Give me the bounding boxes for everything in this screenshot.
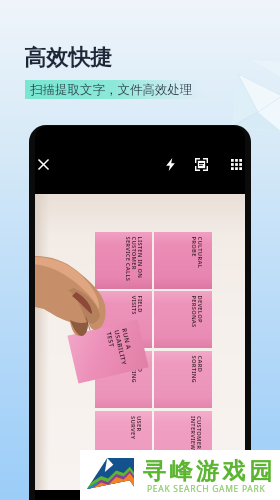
staticText: CUSTOMER bbox=[131, 236, 137, 270]
staticText: PROBE bbox=[191, 236, 197, 257]
staticText: INTERVIEW bbox=[191, 416, 197, 451]
staticText: 扫描提取文字，文件高效处理 bbox=[30, 82, 193, 98]
staticText: SORTING bbox=[191, 355, 197, 383]
staticText: PERSONAS bbox=[191, 295, 197, 327]
staticText: USABILITY bbox=[114, 329, 129, 366]
button[interactable]: Flash bbox=[156, 150, 184, 178]
button[interactable]: Document scan bbox=[187, 150, 215, 178]
staticText: SORTING bbox=[131, 355, 137, 383]
staticText: SURVEY bbox=[131, 416, 137, 440]
staticText: LISTEN IN ON bbox=[137, 236, 143, 278]
staticText: SERVICE CALLS bbox=[125, 236, 131, 281]
staticText: TEST bbox=[106, 331, 117, 348]
staticText: CARD bbox=[137, 355, 143, 372]
staticText: VISITS bbox=[131, 295, 137, 315]
staticText: CULTURAL bbox=[197, 236, 203, 268]
staticText: USER bbox=[137, 416, 143, 432]
staticText: PEAK SEARCH GAME PARK bbox=[147, 483, 266, 495]
staticText: CARD bbox=[197, 355, 203, 372]
staticText: DEVELOP bbox=[197, 295, 203, 323]
staticText: 寻峰游戏园 bbox=[141, 457, 274, 486]
button[interactable]: More modes bbox=[222, 150, 245, 178]
staticText: FIELD bbox=[137, 295, 143, 313]
staticText: 高效快捷 bbox=[24, 44, 112, 72]
staticText: RUN A bbox=[122, 327, 134, 350]
button[interactable]: Close bbox=[35, 150, 57, 178]
staticText: CUSTOMER bbox=[197, 416, 203, 450]
